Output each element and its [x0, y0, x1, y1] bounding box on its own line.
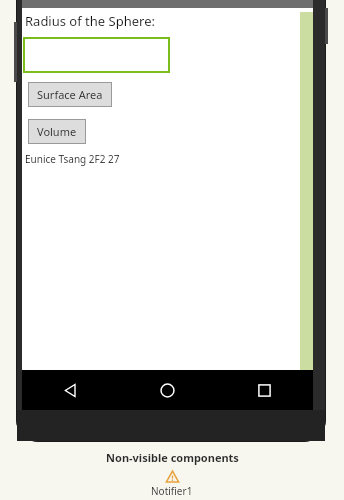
staticText: Non-visible components — [106, 450, 239, 465]
button[interactable]: Back — [22, 370, 119, 410]
button[interactable]: Recent apps — [216, 370, 313, 410]
button[interactable] — [23, 37, 170, 73]
staticText: Notifier1 — [151, 484, 193, 498]
staticText: Eunice Tsang 2F2 27 — [25, 152, 120, 166]
staticText: Surface Area — [37, 87, 103, 102]
button[interactable]: Surface Area — [28, 82, 112, 107]
button[interactable]: Notifier1 component — [151, 470, 193, 498]
button[interactable]: Home — [119, 370, 216, 410]
staticText: Volume — [37, 124, 77, 139]
staticText: Radius of the Sphere: — [25, 12, 155, 30]
button[interactable]: Volume — [28, 119, 86, 144]
